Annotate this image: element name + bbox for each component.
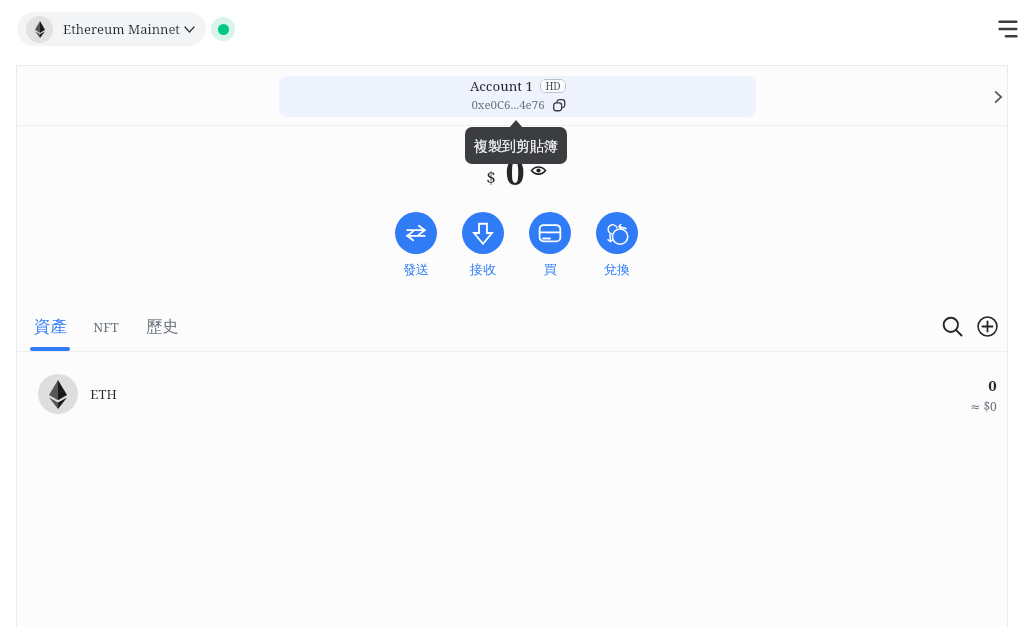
staticText: 兌換: [604, 261, 630, 277]
staticText: 資產: [34, 316, 67, 337]
staticText: 0xe0C6...4e76: [471, 97, 545, 113]
button[interactable]: NFT: [86, 318, 126, 359]
button[interactable]: Send: [386, 212, 446, 277]
staticText: Ethereum Mainnet: [63, 20, 180, 38]
button[interactable]: 歷史: [142, 316, 182, 357]
button[interactable]: Buy: [520, 212, 580, 277]
staticText: ≈ $0: [970, 398, 997, 414]
staticText: Account 1: [470, 77, 533, 95]
staticText: 發送: [403, 261, 429, 277]
button[interactable]: ETH: [17, 366, 1007, 422]
button[interactable]: Menu: [988, 9, 1024, 49]
staticText: ETH: [90, 385, 117, 403]
button[interactable]: Import tokens: [970, 309, 1004, 343]
button[interactable]: Swap: [587, 212, 647, 277]
button[interactable]: Account options: [980, 79, 1016, 115]
button[interactable]: Connected: [211, 17, 235, 41]
button[interactable]: 資產: [30, 316, 70, 357]
staticText: HD: [545, 79, 561, 93]
button[interactable]: Search: [935, 309, 969, 343]
button[interactable]: Hide balance: [529, 161, 547, 179]
button[interactable]: Ethereum Mainnet: [17, 12, 206, 46]
button[interactable]: Account 1: [279, 76, 756, 117]
staticText: 複製到剪貼簿: [474, 138, 558, 156]
staticText: 0: [505, 149, 525, 195]
button[interactable]: Receive: [453, 212, 513, 277]
staticText: 買: [544, 261, 557, 277]
staticText: 0: [988, 375, 997, 395]
staticText: $: [486, 166, 496, 189]
button[interactable]: Copy address: [553, 99, 565, 111]
staticText: 歷史: [146, 316, 179, 337]
staticText: NFT: [93, 318, 119, 336]
staticText: 接收: [470, 261, 496, 277]
